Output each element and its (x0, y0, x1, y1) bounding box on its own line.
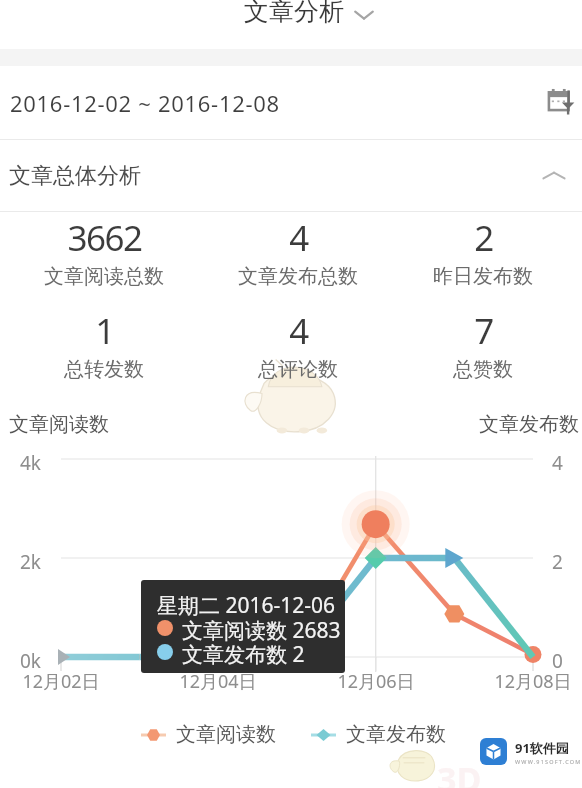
staticText: 3662 (67, 214, 142, 262)
staticText: WWW.91SOFT.COM (515, 758, 582, 765)
staticText: 文章总体分析 (9, 162, 141, 190)
button[interactable]: 3662 (7, 214, 201, 289)
staticText: 0 (552, 648, 563, 674)
staticText: 91软件园 (515, 739, 569, 757)
button[interactable]: 文章阅读数 (141, 722, 276, 747)
staticText: 12月04日 (173, 669, 263, 694)
staticText: 总评论数 (258, 357, 338, 382)
staticText: 星期二 2016-12-06 (157, 591, 336, 620)
staticText: 文章发布数 2 (182, 640, 305, 669)
staticText: 2 (474, 214, 493, 262)
staticText: 文章阅读数 2683 (182, 616, 341, 645)
staticText: 4 (289, 307, 308, 355)
staticText: 文章发布数 (479, 412, 579, 437)
staticText: 12月02日 (16, 669, 106, 694)
staticText: 文章发布总数 (238, 264, 358, 289)
staticText: 0k (20, 648, 42, 674)
staticText: 4k (20, 450, 42, 476)
button[interactable]: Choose date range (541, 82, 577, 118)
staticText: 总赞数 (453, 357, 513, 382)
button[interactable]: 文章发布数 (311, 722, 446, 747)
staticText: 文章阅读总数 (44, 264, 164, 289)
staticText: 2 (552, 549, 563, 575)
staticText: 12月06日 (331, 669, 421, 694)
button[interactable]: 2016-12-02 ~ 2016-12-08 (0, 66, 582, 139)
staticText: 昨日发布数 (433, 264, 533, 289)
button[interactable]: 2 (389, 214, 577, 289)
staticText: 文章分析 (244, 0, 344, 27)
button[interactable]: 文章分析 (0, 0, 582, 49)
button[interactable]: 4 (201, 214, 395, 289)
staticText: 7 (474, 307, 493, 355)
staticText: 总转发数 (64, 357, 144, 382)
button[interactable]: 4 (201, 307, 395, 382)
staticText: 12月08日 (488, 669, 578, 694)
staticText: 文章发布数 (346, 722, 446, 747)
staticText: 4 (289, 214, 308, 262)
staticText: 3D (437, 756, 482, 788)
staticText: 文章阅读数 (176, 722, 276, 747)
button[interactable]: 1 (7, 307, 201, 382)
button[interactable]: 7 (389, 307, 577, 382)
staticText: 1 (95, 307, 114, 355)
staticText: 2k (20, 549, 42, 575)
button[interactable]: 文章总体分析 (0, 140, 582, 211)
staticText: 4 (552, 450, 563, 476)
staticText: 文章阅读数 (9, 412, 109, 437)
staticText: 2016-12-02 ~ 2016-12-08 (10, 88, 280, 118)
